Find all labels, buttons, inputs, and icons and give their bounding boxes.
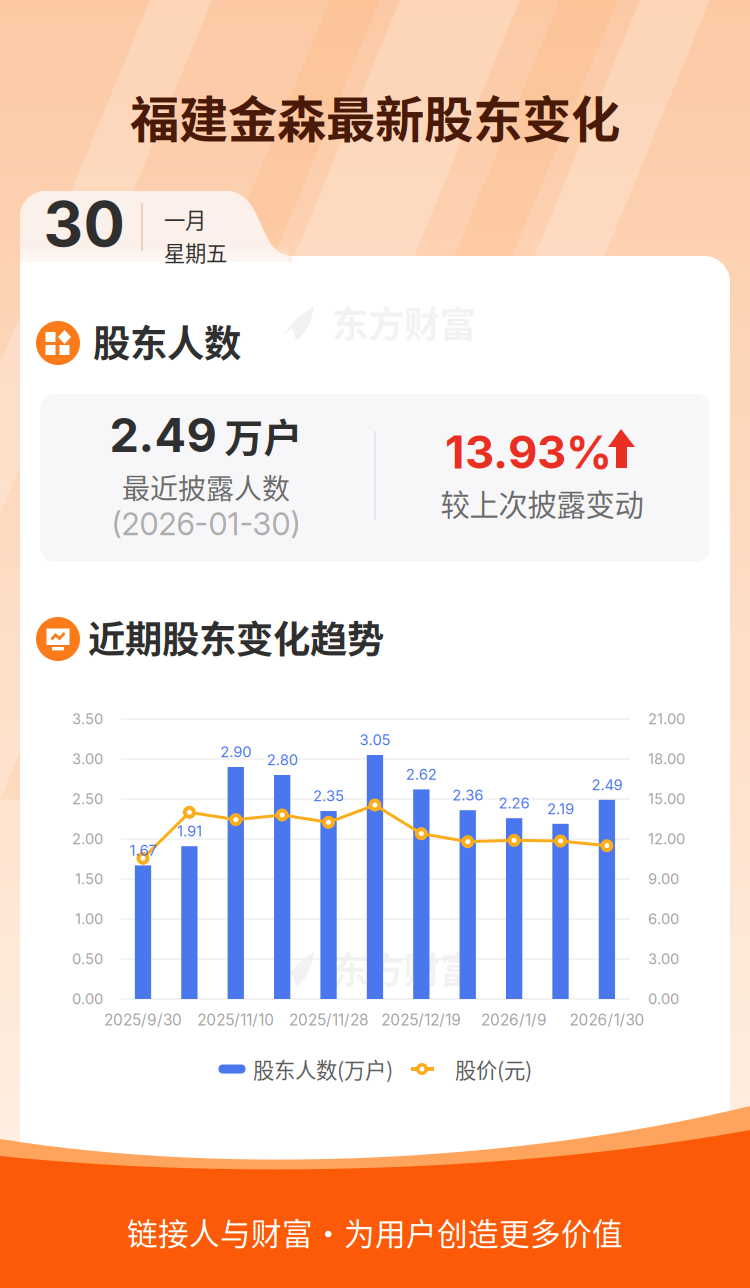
staticText: 股价(元) [455,1054,532,1084]
staticText: 0.50 [72,950,103,968]
staticText: 6.00 [648,910,679,928]
staticText: 2.80 [267,751,298,769]
staticText: 21.00 [648,710,685,728]
staticText: 13.93% [445,425,612,479]
staticText: 股东人数(万户) [253,1054,393,1084]
staticText: 2.62 [406,765,437,783]
staticText: 3.00 [648,950,679,968]
staticText: 15.00 [648,790,685,808]
staticText: 较上次披露变动 [440,482,643,524]
staticText: 12.00 [648,830,685,848]
staticText: 3.50 [72,710,103,728]
staticText: 1.67 [129,841,156,859]
staticText: 9.00 [648,870,679,888]
staticText: 0.00 [72,990,103,1008]
staticText: 2025/11/28 [289,1011,368,1029]
staticText: 3.00 [72,750,103,768]
staticText: 2.49 [591,776,622,794]
staticText: 链接人与财富·为用户创造更多价值 [127,1210,623,1254]
staticText: 2025/9/30 [104,1011,182,1029]
staticText: 2.90 [220,743,251,761]
staticText: 0.00 [648,990,679,1008]
staticText: 一月 [164,204,206,234]
staticText: 2025/11/10 [197,1011,274,1029]
staticText: 股东人数 [93,314,241,368]
staticText: 近期股东变化趋势 [88,610,384,664]
staticText: 3.05 [359,731,390,749]
staticText: 1.91 [177,822,202,840]
staticText: 2.19 [547,800,574,818]
staticText: 18.00 [648,750,685,768]
staticText: 东方财富 [332,942,476,994]
staticText: 2.00 [72,830,103,848]
staticText: 1.00 [75,910,103,928]
staticText: 2.35 [313,787,344,805]
staticText: (2026-01-30) [111,505,300,542]
staticText: 2.49 [109,407,216,463]
staticText: 1.50 [75,870,103,888]
staticText: 东方财富 [332,296,476,348]
staticText: 万户 [224,407,302,463]
staticText: 最近披露人数 [122,467,290,507]
staticText: 福建金森最新股东变化 [130,80,620,152]
staticText: 2.26 [499,794,530,812]
staticText: 星期五 [164,237,227,267]
staticText: 2026/1/30 [569,1011,644,1029]
staticText: 2026/1/9 [481,1011,547,1029]
staticText: 2025/12/19 [381,1011,461,1029]
staticText: 2.36 [452,786,483,804]
staticText: 2.50 [72,790,103,808]
staticText: 30 [43,187,124,261]
